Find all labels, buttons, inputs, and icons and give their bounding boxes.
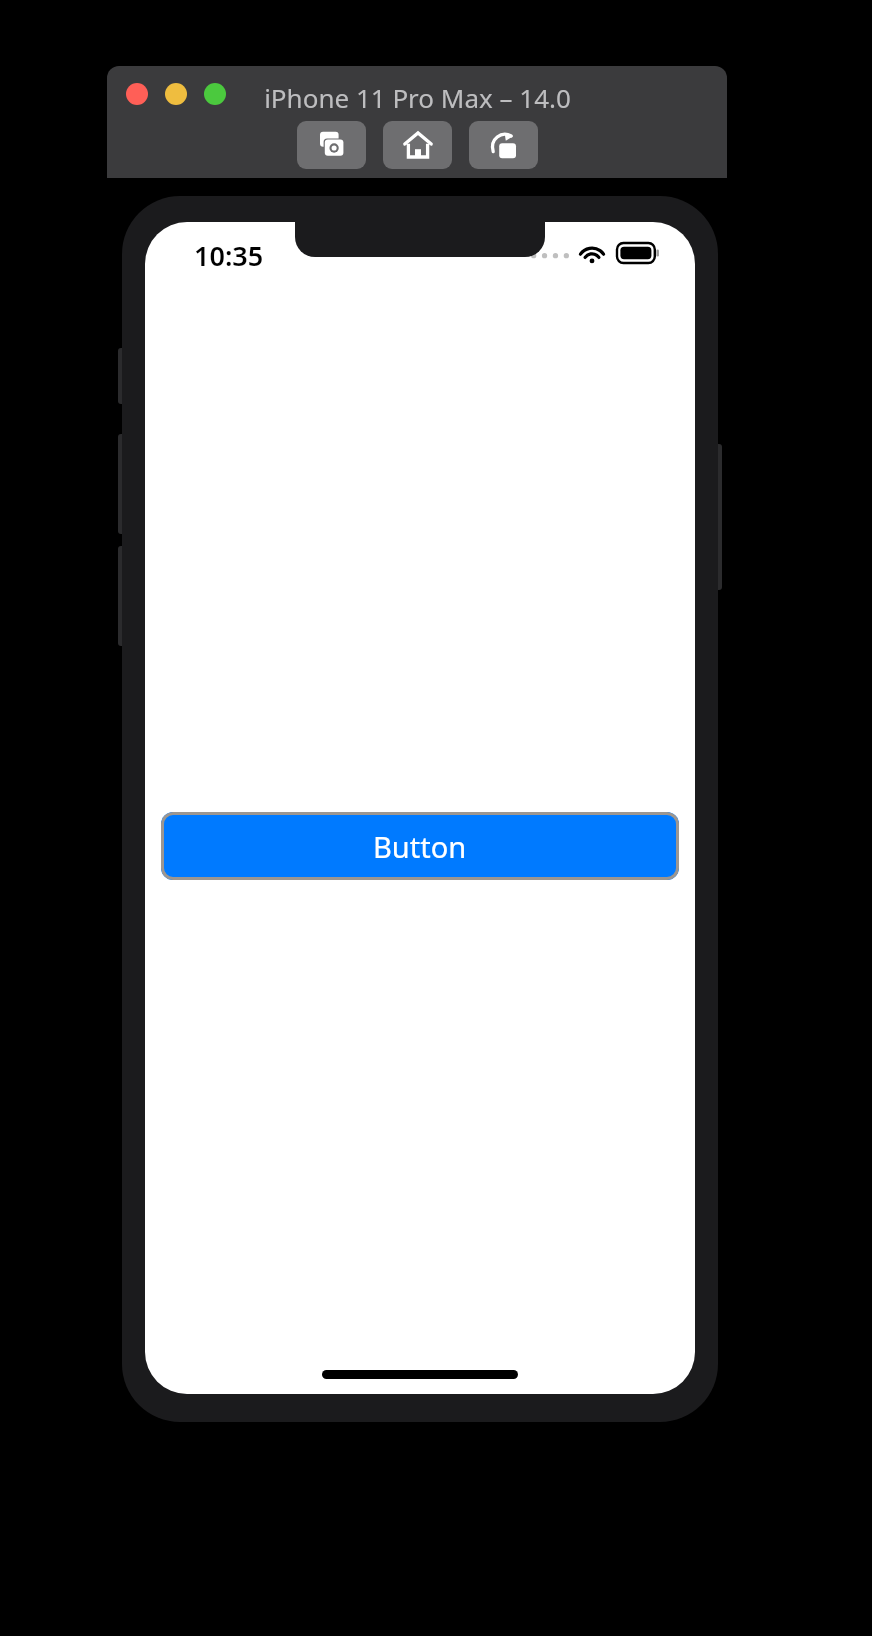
staticText: 10:35 — [194, 237, 264, 274]
staticText: iPhone 11 Pro Max – 14.0 — [264, 80, 571, 115]
button[interactable]: Button — [161, 812, 679, 880]
button[interactable]: Rotate — [469, 121, 538, 169]
button[interactable]: Home — [383, 121, 452, 169]
button[interactable]: Screenshot — [297, 121, 366, 169]
staticText: Button — [373, 827, 467, 866]
